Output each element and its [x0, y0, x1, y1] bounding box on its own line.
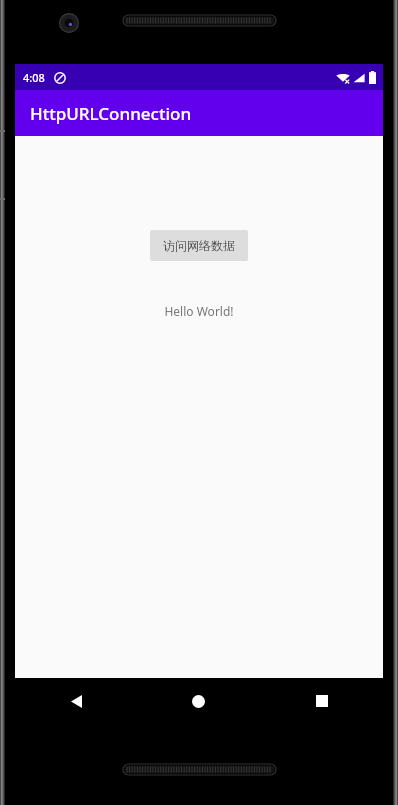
staticText: Hello World!	[164, 303, 234, 319]
button[interactable]: Recent apps	[260, 678, 383, 724]
button[interactable]: 访问网络数据	[150, 230, 248, 261]
staticText: HttpURLConnection	[30, 102, 192, 125]
button[interactable]: Home	[137, 678, 260, 724]
button[interactable]: Back	[15, 678, 137, 724]
staticText: 4:08	[23, 70, 45, 85]
staticText: 访问网络数据	[163, 238, 235, 253]
